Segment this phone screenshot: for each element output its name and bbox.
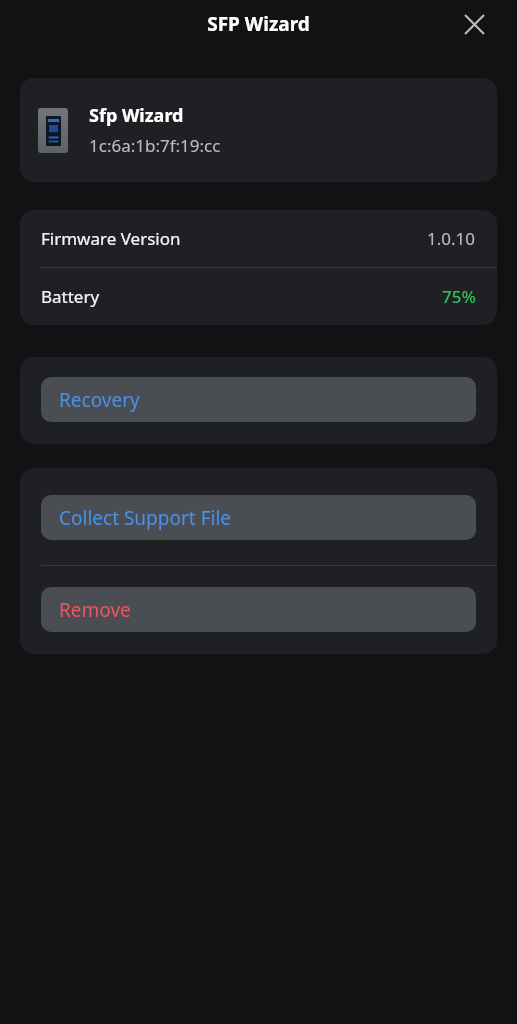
staticText: Sfp Wizard	[89, 103, 184, 128]
staticText: 75%	[442, 285, 476, 308]
button[interactable]: Close	[453, 3, 495, 45]
staticText: 1.0.10	[427, 227, 476, 250]
staticText: Collect Support File	[59, 505, 232, 531]
button[interactable]: Collect Support File	[41, 495, 476, 540]
button[interactable]: Remove	[41, 587, 476, 632]
staticText: Firmware Version	[41, 227, 181, 250]
staticText: Battery	[41, 285, 100, 308]
button[interactable]: Sfp Wizard	[20, 78, 497, 182]
staticText: Recovery	[59, 387, 140, 413]
button[interactable]: Recovery	[41, 377, 476, 422]
staticText: 1c:6a:1b:7f:19:cc	[89, 134, 221, 157]
staticText: SFP Wizard	[0, 11, 517, 37]
staticText: Remove	[59, 597, 131, 623]
